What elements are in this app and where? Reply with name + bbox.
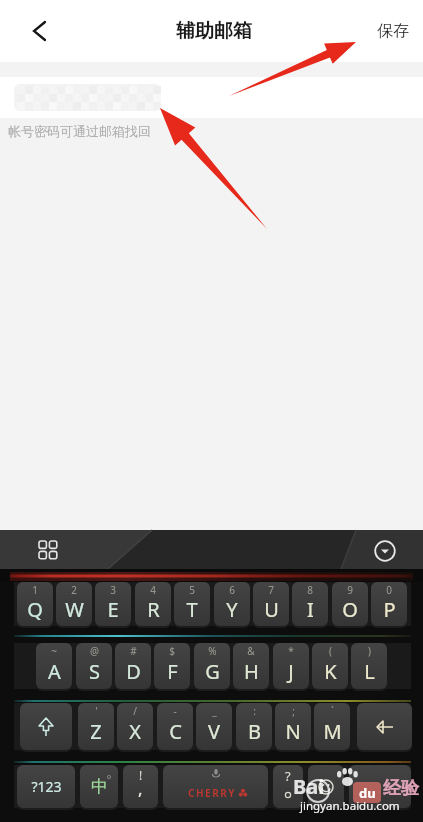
button[interactable]: 中 bbox=[80, 765, 118, 808]
staticText: 9 bbox=[347, 583, 353, 597]
staticText: 0 bbox=[386, 583, 392, 597]
staticText: E bbox=[107, 596, 119, 623]
staticText: ; bbox=[292, 704, 295, 718]
button[interactable]: @ bbox=[76, 643, 112, 689]
staticText: 辅助邮箱 bbox=[176, 19, 252, 43]
button[interactable] bbox=[349, 765, 411, 808]
staticText: ! bbox=[139, 767, 143, 783]
staticText: $ bbox=[169, 644, 175, 658]
button[interactable]: ; bbox=[275, 703, 311, 750]
button[interactable] bbox=[28, 530, 68, 569]
staticText: 2 bbox=[71, 583, 77, 597]
staticText: * bbox=[288, 644, 294, 658]
staticText: % bbox=[208, 644, 217, 658]
staticText: J bbox=[288, 658, 294, 685]
staticText: L bbox=[364, 658, 375, 685]
button[interactable]: $ bbox=[154, 643, 190, 689]
button[interactable]: * bbox=[273, 643, 309, 689]
staticText: W bbox=[65, 596, 84, 623]
staticText: D bbox=[126, 658, 141, 685]
staticText: 帐号密码可通过邮箱找回 bbox=[8, 123, 151, 139]
button[interactable]: 0 bbox=[371, 582, 407, 626]
button[interactable]: ?123 bbox=[17, 765, 75, 808]
button[interactable]: # bbox=[115, 643, 151, 689]
button[interactable] bbox=[308, 765, 344, 808]
staticText: 5 bbox=[189, 583, 195, 597]
staticText: T bbox=[186, 596, 198, 623]
button[interactable] bbox=[0, 77, 423, 118]
staticText: CHERRY bbox=[188, 786, 237, 800]
button[interactable] bbox=[365, 531, 405, 570]
staticText: P bbox=[383, 596, 396, 623]
staticText: S bbox=[89, 658, 100, 685]
staticText: B bbox=[248, 718, 261, 745]
button[interactable]: / bbox=[117, 703, 153, 750]
button[interactable]: ` bbox=[314, 703, 350, 750]
staticText: ' bbox=[95, 704, 98, 718]
staticText: 6 bbox=[229, 583, 235, 597]
staticText: R bbox=[147, 596, 160, 623]
button[interactable]: 1 bbox=[17, 582, 53, 626]
staticText: # bbox=[130, 644, 137, 658]
button[interactable]: 5 bbox=[174, 582, 210, 626]
button[interactable]: ) bbox=[351, 643, 387, 689]
staticText: X bbox=[129, 718, 141, 745]
button[interactable]: 6 bbox=[214, 582, 250, 626]
staticText: 经验 bbox=[383, 777, 419, 800]
staticText: V bbox=[208, 718, 220, 745]
staticText: F bbox=[167, 658, 178, 685]
staticText: ? bbox=[285, 767, 291, 785]
staticText: @ bbox=[90, 644, 99, 658]
button[interactable]: 9 bbox=[332, 582, 368, 626]
button[interactable]: 保存 bbox=[381, 21, 413, 41]
button[interactable]: ! bbox=[123, 765, 158, 808]
staticText: _ bbox=[212, 704, 217, 718]
staticText: du bbox=[359, 784, 376, 802]
button[interactable] bbox=[20, 703, 72, 750]
button[interactable]: CHERRY bbox=[163, 765, 268, 808]
staticText: Q bbox=[27, 596, 43, 623]
staticText: 中 bbox=[91, 776, 108, 797]
staticText: 7 bbox=[268, 583, 274, 597]
staticText: K bbox=[324, 658, 337, 685]
button[interactable]: 2 bbox=[56, 582, 92, 626]
staticText: / bbox=[133, 704, 137, 718]
staticText: & bbox=[247, 644, 255, 658]
staticText: ~ bbox=[51, 644, 57, 658]
button[interactable]: 8 bbox=[292, 582, 328, 626]
button[interactable]: ( bbox=[312, 643, 348, 689]
staticText: A bbox=[48, 658, 61, 685]
staticText: 1 bbox=[32, 583, 38, 597]
button[interactable]: ~ bbox=[36, 643, 72, 689]
staticText: U bbox=[264, 596, 279, 623]
staticText: Y bbox=[226, 596, 238, 623]
staticText: G bbox=[205, 658, 220, 685]
button[interactable]: : bbox=[236, 703, 272, 750]
staticText: 保存 bbox=[377, 21, 409, 41]
staticText: C bbox=[169, 718, 182, 745]
button[interactable]: 4 bbox=[135, 582, 171, 626]
button[interactable]: % bbox=[194, 643, 230, 689]
button[interactable]: 7 bbox=[253, 582, 289, 626]
staticText: O bbox=[342, 596, 358, 623]
staticText: 3 bbox=[110, 583, 116, 597]
button[interactable]: & bbox=[233, 643, 269, 689]
staticText: ?123 bbox=[31, 777, 62, 796]
button[interactable]: ' bbox=[78, 703, 114, 750]
staticText: : bbox=[253, 704, 256, 718]
button[interactable]: ? bbox=[273, 765, 303, 808]
staticText: ( bbox=[329, 644, 332, 658]
staticText: ` bbox=[331, 704, 334, 718]
button[interactable]: _ bbox=[196, 703, 232, 750]
staticText: H bbox=[244, 658, 259, 685]
staticText: Z bbox=[90, 718, 102, 745]
button[interactable] bbox=[22, 14, 56, 48]
staticText: Bai bbox=[293, 773, 325, 800]
button[interactable]: - bbox=[157, 703, 193, 750]
staticText: - bbox=[173, 704, 177, 718]
button[interactable] bbox=[357, 703, 412, 750]
staticText: 8 bbox=[307, 583, 313, 597]
staticText: I bbox=[307, 596, 314, 623]
button[interactable]: 3 bbox=[95, 582, 131, 626]
staticText: N bbox=[285, 718, 301, 745]
